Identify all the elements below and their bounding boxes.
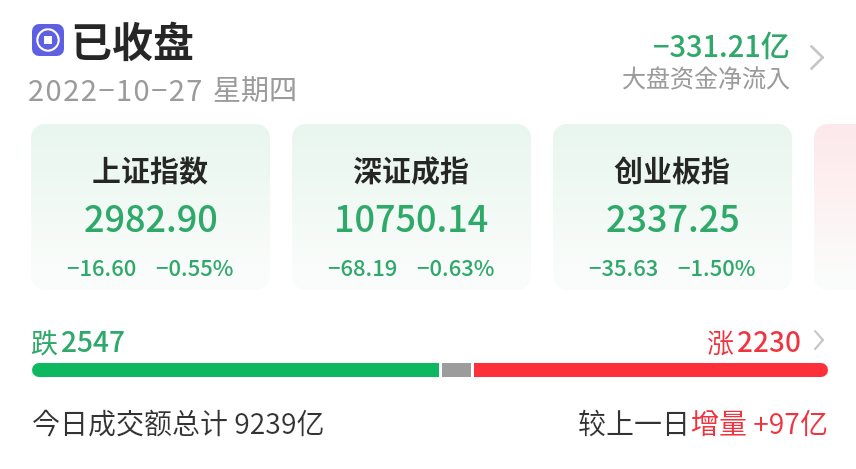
staticText: 创业板指 [614,148,731,190]
button[interactable]: 科创50 [814,124,856,290]
button[interactable]: Market closed [32,24,64,56]
staticText: 10750.14 [334,190,489,242]
staticText: 增量 +97亿 [691,402,828,443]
staticText: 大盘资金净流入 [622,59,790,94]
staticText: 星期四 [213,68,298,109]
staticText: 上证指数 [92,148,209,190]
staticText: 今日成交额总计 9239亿 [32,402,325,443]
button[interactable]: 涨 [707,320,801,361]
staticText: 已收盘 [71,9,194,68]
staticText: −35.63 [589,250,659,282]
staticText: −0.63% [417,250,495,282]
button[interactable]: 跌 [31,320,125,361]
staticText: 2022−10−27 [28,67,204,109]
button[interactable]: 上证指数 [31,124,270,290]
staticText: 跌 [31,322,58,361]
staticText: 2230 [737,320,801,361]
staticText: 2547 [61,320,125,361]
button[interactable]: Market net capital inflow [610,18,840,98]
staticText: 深证成指 [353,148,470,190]
staticText: 2337.25 [606,190,740,242]
button[interactable]: 深证成指 [292,124,531,290]
staticText: 涨 [707,322,734,361]
staticText: −331.21亿 [653,23,790,65]
button[interactable]: 创业板指 [553,124,792,290]
staticText: −68.19 [328,250,398,282]
staticText: −1.50% [678,250,756,282]
staticText: 较上一日 [578,402,691,443]
staticText: 2982.90 [84,190,218,242]
staticText: −16.60 [67,250,137,282]
staticText: −0.55% [156,250,234,282]
